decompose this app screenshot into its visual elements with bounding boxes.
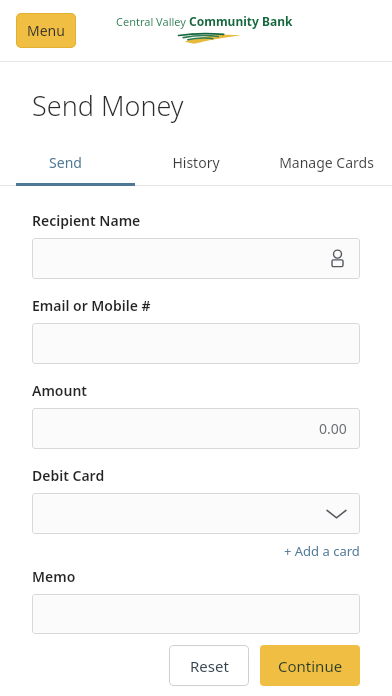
button[interactable]: Continue	[260, 645, 360, 686]
staticText: Community Bank	[189, 13, 293, 29]
staticText: History	[172, 153, 220, 172]
staticText: Debit Card	[32, 466, 105, 485]
staticText: Send	[49, 153, 82, 172]
staticText: Manage Cards	[279, 153, 374, 172]
button[interactable]: History	[130, 151, 261, 174]
staticText: Central Valley	[116, 14, 189, 29]
staticText: Recipient Name	[32, 211, 141, 230]
button[interactable]: Central Valley Community Bank home	[116, 13, 293, 44]
staticText: Send Money	[32, 87, 184, 124]
button[interactable]: 0.00	[32, 408, 360, 449]
button[interactable]: Choose contact	[32, 238, 360, 279]
staticText: Reset	[190, 656, 229, 676]
staticText: + Add a card	[284, 542, 360, 560]
button[interactable]: + Add a card	[282, 540, 362, 562]
staticText: Menu	[27, 21, 65, 40]
staticText: Amount	[32, 381, 88, 400]
button[interactable]: Menu	[16, 13, 76, 48]
button[interactable]	[32, 323, 360, 364]
button[interactable]: Select debit card	[32, 493, 360, 534]
button[interactable]: Send	[0, 151, 130, 174]
button[interactable]: Manage Cards	[261, 151, 392, 174]
staticText: Email or Mobile #	[32, 296, 151, 315]
button[interactable]: Reset	[169, 645, 249, 686]
button[interactable]	[32, 594, 360, 634]
staticText: 0.00	[319, 419, 347, 438]
staticText: Memo	[32, 567, 76, 586]
staticText: Continue	[278, 656, 343, 676]
